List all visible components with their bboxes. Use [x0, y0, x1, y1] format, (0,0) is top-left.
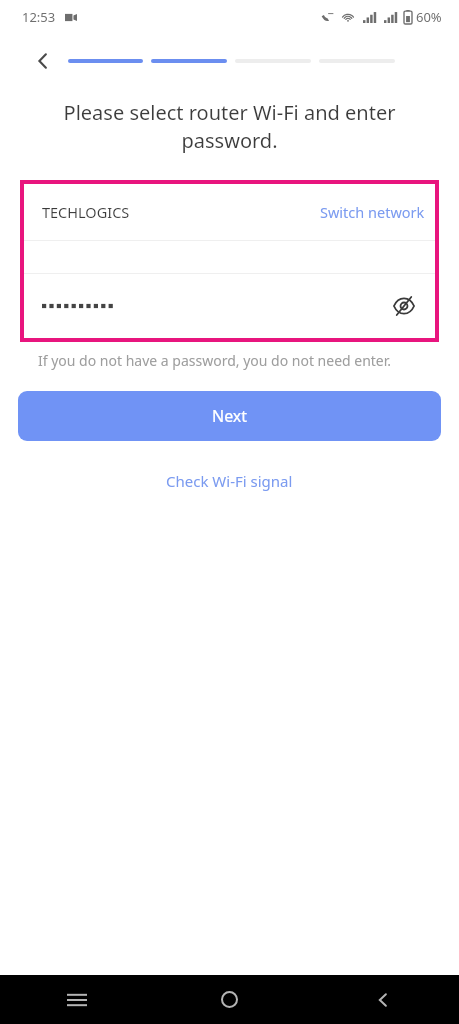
button[interactable]: Show password	[387, 289, 421, 323]
button[interactable]: TECHLOGICS	[24, 184, 435, 240]
staticText: Check Wi-Fi signal	[166, 471, 293, 491]
button[interactable]: Back	[30, 48, 56, 74]
staticText: Next	[212, 405, 248, 427]
button[interactable]: Home	[153, 975, 306, 1024]
staticText: TECHLOGICS	[42, 202, 130, 222]
button[interactable]: Check Wi-Fi signal	[150, 465, 309, 497]
button[interactable]: Back	[306, 975, 459, 1024]
staticText: If you do not have a password, you do no…	[38, 351, 425, 370]
staticText: 12:53	[22, 8, 56, 26]
button[interactable]: Show password	[24, 274, 435, 338]
button[interactable]: Recent apps	[0, 975, 153, 1024]
staticText: Please select router Wi-Fi and enter pas…	[28, 99, 431, 154]
staticText: Switch network	[320, 202, 425, 222]
button[interactable]: Next	[18, 391, 441, 441]
staticText: 60%	[416, 8, 442, 26]
